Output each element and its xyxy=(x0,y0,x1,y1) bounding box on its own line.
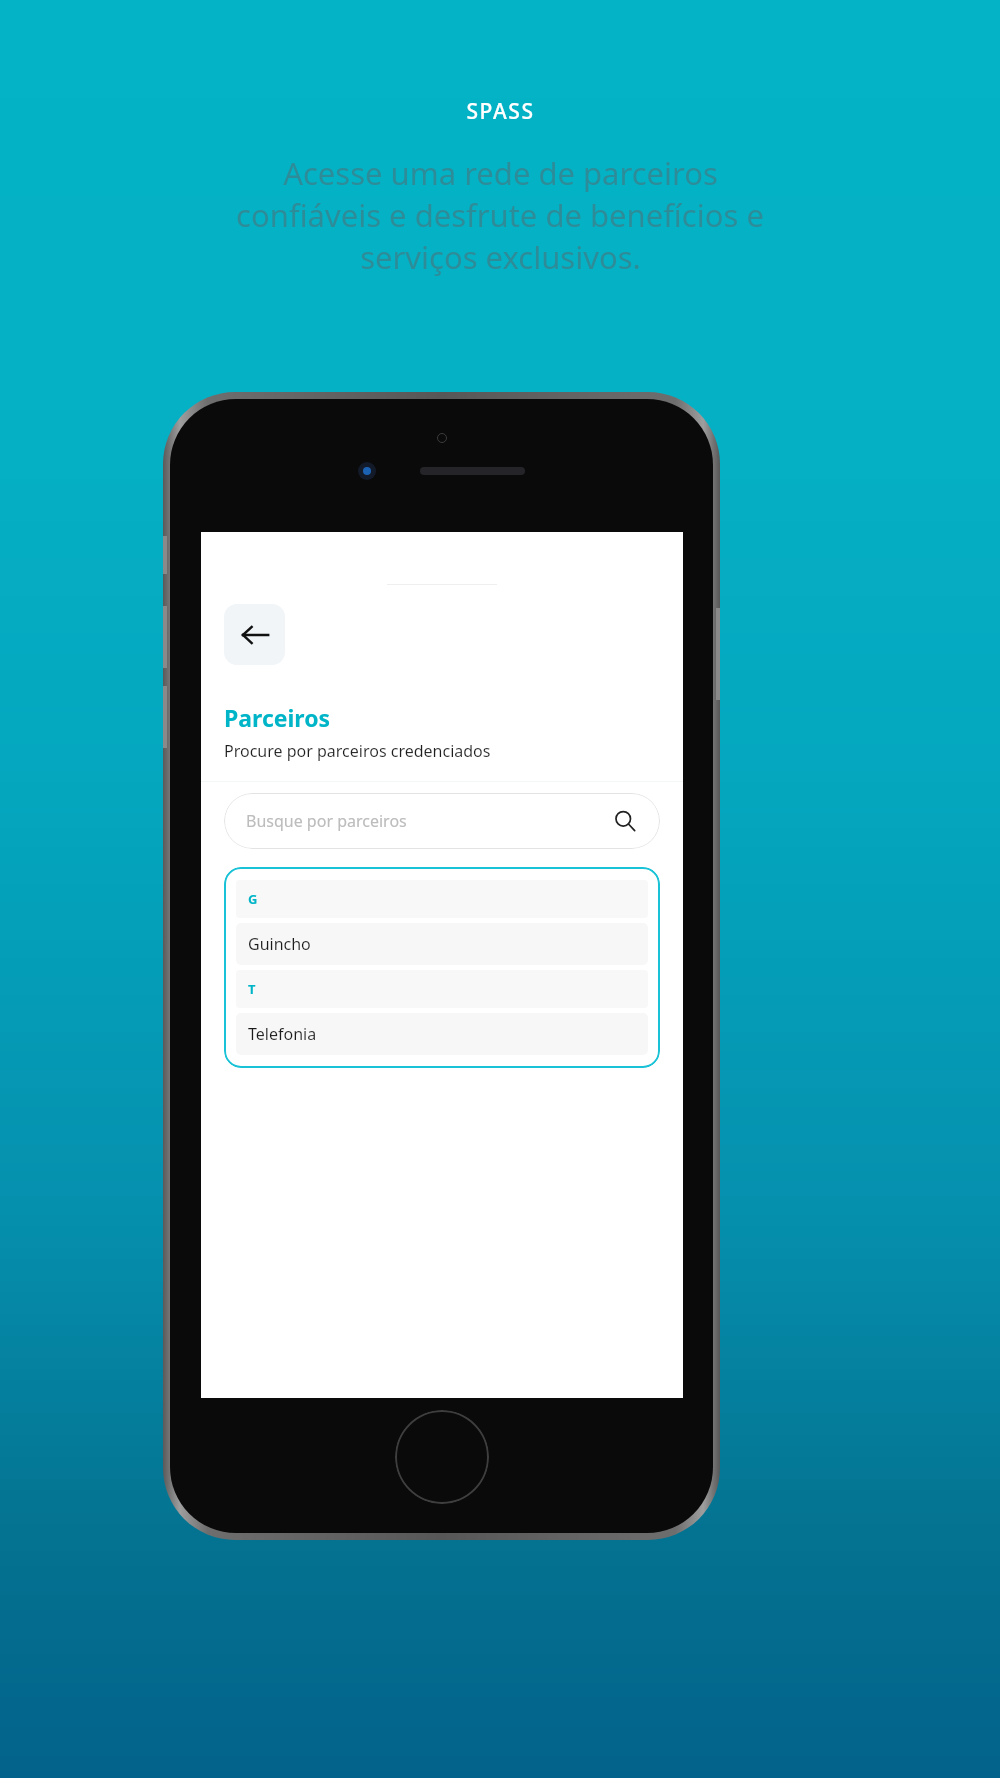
button[interactable]: Telefonia xyxy=(236,1013,648,1055)
button[interactable]: Busque por parceiros xyxy=(224,793,660,849)
staticText: Acesse uma rede de parceiros xyxy=(283,152,718,194)
other: Search xyxy=(612,808,638,834)
staticText: Procure por parceiros credenciados xyxy=(224,740,491,762)
staticText: G xyxy=(248,890,258,908)
button[interactable]: Guincho xyxy=(236,923,648,965)
staticText: Telefonia xyxy=(248,1023,317,1045)
staticText: serviços exclusivos. xyxy=(360,236,641,278)
staticText: T xyxy=(248,980,256,998)
staticText: Busque por parceiros xyxy=(246,810,612,832)
button[interactable]: Back xyxy=(224,604,285,665)
staticText: confiáveis e desfrute de benefícios e xyxy=(236,194,764,236)
staticText: Parceiros xyxy=(224,702,331,733)
button[interactable]: Home xyxy=(395,1410,489,1504)
staticText: Guincho xyxy=(248,933,311,955)
staticText: SPASS xyxy=(466,97,535,126)
